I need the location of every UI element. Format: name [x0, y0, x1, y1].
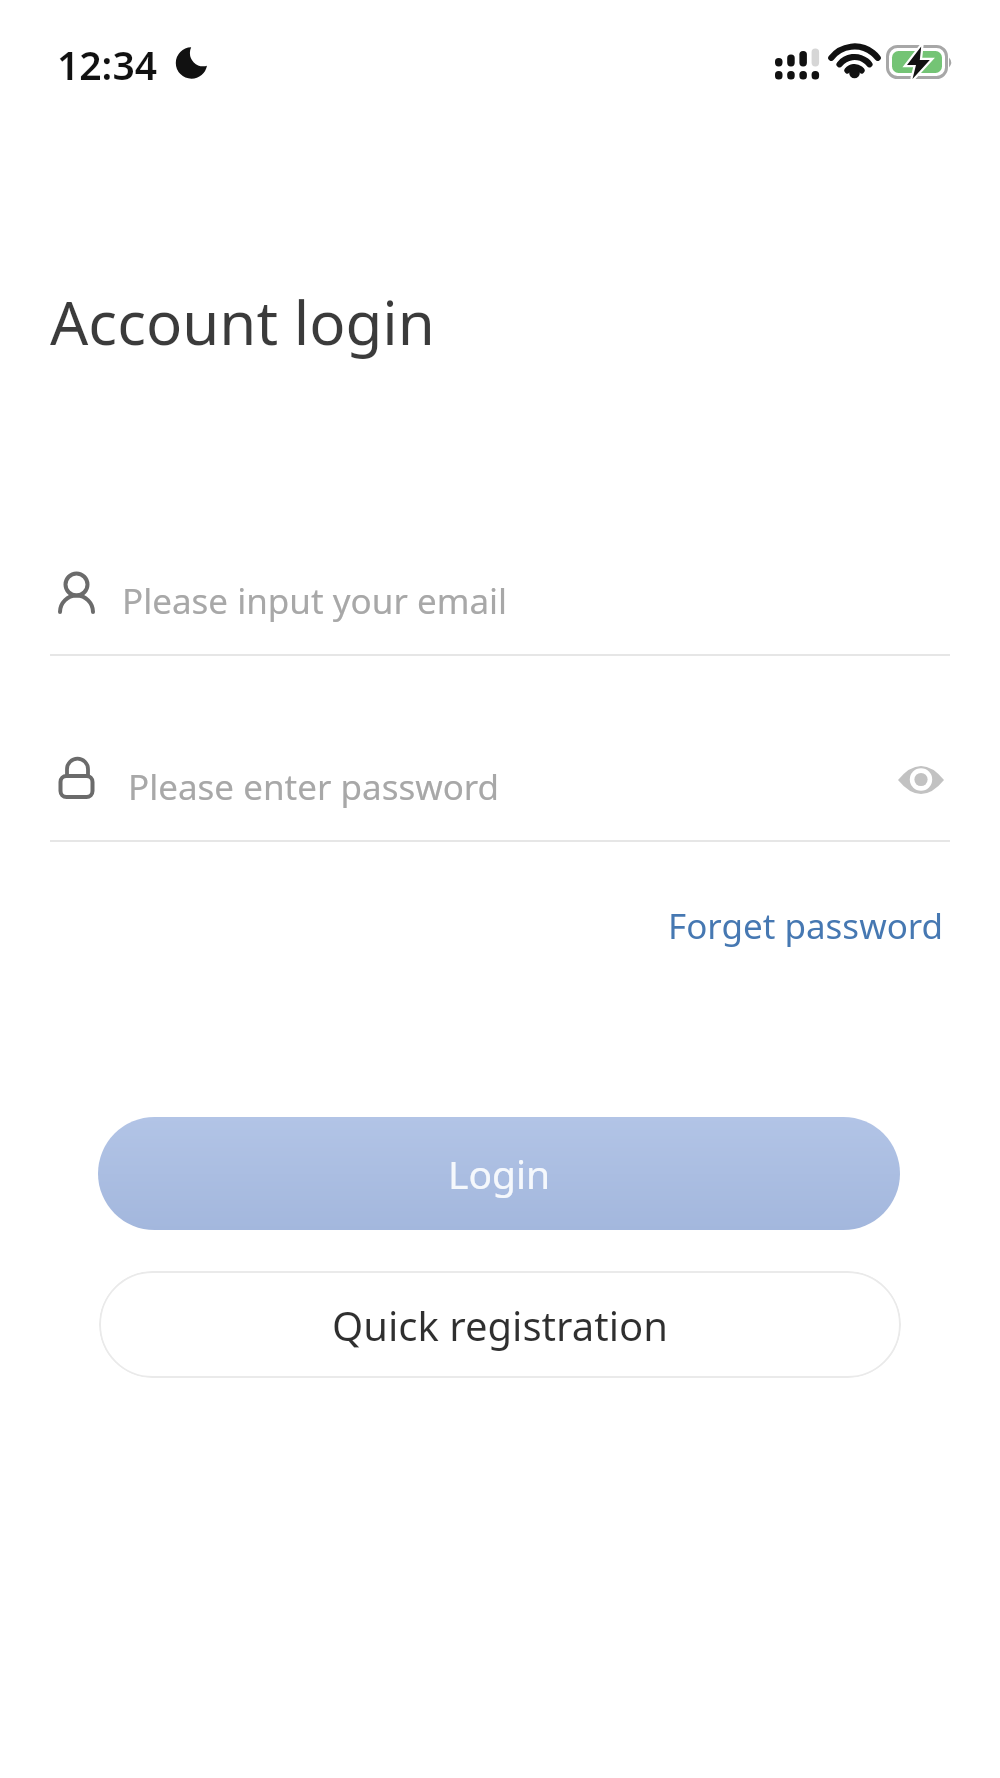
staticText: Please input your email	[122, 577, 508, 625]
staticText: Quick registration	[332, 1298, 668, 1352]
button[interactable]: Forget password	[668, 902, 944, 950]
button[interactable]: Quick registration	[99, 1271, 901, 1378]
staticText: 12:34	[57, 38, 157, 91]
staticText: Login	[448, 1147, 551, 1200]
button[interactable]: Please input your email	[50, 548, 950, 656]
button[interactable]: Login	[98, 1117, 900, 1230]
staticText: Forget password	[668, 902, 944, 950]
staticText: Account login	[50, 281, 435, 363]
staticText: Please enter password	[128, 763, 500, 811]
button[interactable]: Please enter password	[50, 734, 950, 842]
button[interactable]	[897, 765, 945, 795]
